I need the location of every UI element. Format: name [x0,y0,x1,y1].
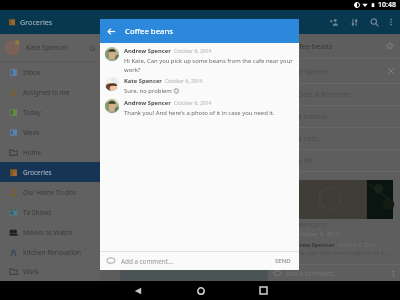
button[interactable]: Add a file [284,150,394,171]
button[interactable]: Inbox [0,62,100,82]
staticText: Kate Spencer [124,77,162,85]
staticText: Groceries [23,168,52,177]
staticText: Thank you! And here's a photo of it in c… [124,109,275,117]
staticText: Coffee beans.png [274,220,327,229]
staticText: Add a subtask [284,112,328,121]
button[interactable]: Search [364,12,384,32]
staticText: Kitchen Renovation [23,248,82,257]
staticText: TV Shows [23,208,52,217]
staticText: October 6, 2014 [174,100,212,107]
staticText: Coffee beans [288,41,333,51]
button[interactable]: Movies to Watch [0,222,100,242]
staticText: Sure, no problem 😊 [124,87,180,95]
staticText: Andrew Spencer [124,47,171,55]
staticText: Add a comment... [286,269,338,278]
staticText: Our Home To-dos [23,188,76,197]
staticText: Due Date & Reminder [284,90,352,99]
button[interactable]: More options [386,266,400,280]
staticText: Coffee beans [125,26,173,37]
button[interactable]: Back [128,281,148,300]
button[interactable]: Add a subtask [284,106,394,127]
staticText: October 6, 2014 [174,48,212,55]
staticText: SEND [275,257,291,265]
button[interactable]: Today [0,102,100,122]
button[interactable]: TV Shows [0,202,100,222]
staticText: Movies to Watch [23,228,73,237]
staticText: Add a note... [284,134,323,143]
button[interactable]: Kitchen Renovation [0,242,100,262]
button[interactable]: Add a comment... [100,252,299,270]
button[interactable]: Notifications [84,40,100,56]
button[interactable]: Kate Spencer [274,59,394,83]
staticText: Thank you! And here's a photo of it i... [288,249,392,257]
button[interactable]: Home [191,281,211,300]
button[interactable]: More options [384,12,397,32]
button[interactable]: Recent apps [253,281,273,300]
staticText: October 6, 2014 [338,242,376,249]
staticText: Week [23,128,40,137]
button[interactable]: Coffee beans [274,34,394,58]
staticText: Hi Kate, Can you pick up some beans from… [124,57,293,73]
button[interactable]: Add a comment... [268,265,400,281]
button[interactable]: Add person [324,12,344,32]
staticText: Work [23,267,39,276]
staticText: Inbox [23,68,41,77]
staticText: 778 KB • October 6, 2014 [274,230,339,238]
staticText: Today [23,108,41,117]
button[interactable]: Work [0,262,100,281]
button[interactable]: Groceries [8,17,53,27]
staticText: Home [23,148,42,157]
button[interactable]: Due Date & Reminder [284,84,394,105]
staticText: Groceries [20,17,53,27]
staticText: Kate Spencer [26,43,68,52]
button[interactable]: Our Home To-dos [0,182,100,202]
staticText: Andrew Spencer [124,99,171,107]
staticText: October 6, 2014 [165,78,203,85]
staticText: Assigned to me [23,88,70,97]
button[interactable]: Assigned to me [0,82,100,102]
staticText: Add a file [284,156,313,165]
button[interactable]: Sort [344,12,364,32]
staticText: Add a comment... [121,257,275,266]
button[interactable]: Kate Spencer [0,34,100,61]
button[interactable]: Week [0,122,100,142]
button[interactable]: Add a note... [284,128,394,149]
button[interactable]: Back [100,20,122,42]
button[interactable]: Home [0,142,100,162]
button[interactable]: Groceries [0,162,100,182]
staticText: Kate Spencer [289,67,330,76]
staticText: Andrew Spencer [288,241,335,249]
staticText: 10:48 [378,0,396,10]
